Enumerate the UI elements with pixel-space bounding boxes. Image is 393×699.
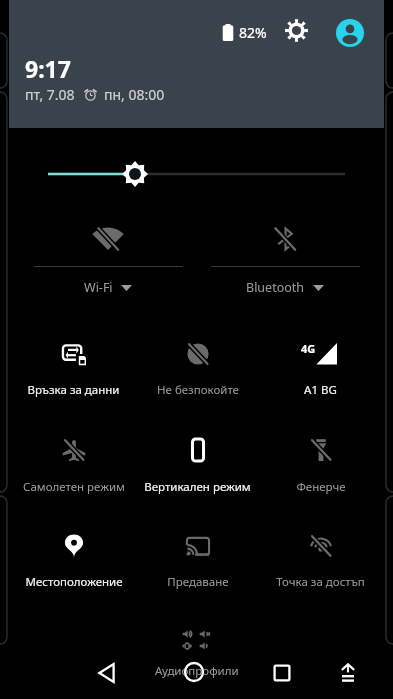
button[interactable]: Вертикален режим <box>136 424 259 499</box>
button[interactable]: A1 BG <box>259 328 382 402</box>
staticText: Самолетен режим <box>23 479 125 495</box>
staticText: Не безпокойте <box>157 382 239 398</box>
button[interactable]: Предаване <box>136 520 259 594</box>
staticText: Предаване <box>167 574 229 590</box>
button[interactable]: Home <box>170 650 218 694</box>
staticText: Фенерче <box>296 479 346 495</box>
button[interactable]: Фенерче <box>259 424 382 499</box>
staticText: Вертикален режим <box>144 479 251 495</box>
button[interactable]: Връзка за данни <box>12 328 135 402</box>
staticText: Местоположение <box>25 574 123 590</box>
staticText: 82% <box>239 23 267 42</box>
button[interactable]: Точка за достъп <box>259 520 382 594</box>
staticText: A1 BG <box>304 382 337 398</box>
staticText: пт, 7.08 <box>25 85 75 104</box>
staticText: Връзка за данни <box>27 382 120 398</box>
button[interactable]: Аудиопрофили <box>144 624 250 680</box>
button[interactable]: Brightness <box>40 158 353 190</box>
staticText: 9:17 <box>25 53 71 84</box>
staticText: Аудиопрофили <box>155 663 239 679</box>
button[interactable]: Recent apps <box>258 651 306 695</box>
button[interactable]: Settings <box>283 17 310 44</box>
button[interactable]: Hide panel <box>324 651 372 695</box>
button[interactable]: Wi-Fi <box>20 212 196 302</box>
button[interactable]: Back <box>83 651 131 695</box>
button[interactable]: Bluetooth <box>197 212 373 302</box>
staticText: Bluetooth <box>246 279 305 296</box>
staticText: 4G <box>301 341 316 356</box>
staticText: Wi-Fi <box>84 279 113 296</box>
staticText: Точка за достъп <box>276 574 365 590</box>
button[interactable]: Не безпокойте <box>136 328 259 402</box>
staticText: пн, 08:00 <box>104 85 165 104</box>
button[interactable]: Местоположение <box>12 520 135 594</box>
button[interactable]: Самолетен режим <box>12 424 135 499</box>
button[interactable]: User profile <box>334 17 365 48</box>
